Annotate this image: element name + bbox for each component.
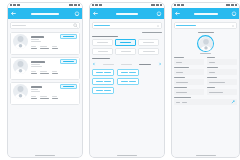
button[interactable]: Notifications — [74, 11, 80, 17]
button[interactable] — [92, 78, 114, 85]
button[interactable] — [92, 48, 113, 55]
button[interactable]: Back — [10, 10, 17, 17]
button[interactable] — [60, 84, 77, 89]
button[interactable]: Notifications — [156, 11, 162, 17]
button[interactable]: Previous day — [92, 62, 96, 66]
button[interactable] — [92, 69, 114, 76]
button[interactable] — [138, 48, 159, 55]
button[interactable] — [92, 87, 114, 94]
button[interactable] — [92, 22, 162, 29]
button[interactable] — [60, 34, 77, 39]
button[interactable] — [174, 22, 237, 29]
button[interactable] — [92, 39, 113, 46]
button[interactable] — [10, 57, 80, 80]
button[interactable] — [60, 59, 77, 64]
button[interactable] — [10, 22, 80, 29]
button[interactable]: Back — [174, 10, 181, 17]
button[interactable] — [115, 48, 136, 55]
button[interactable] — [10, 82, 80, 105]
button[interactable] — [174, 79, 204, 85]
button[interactable] — [117, 69, 139, 76]
button[interactable] — [10, 32, 80, 55]
button[interactable]: Back — [92, 10, 99, 17]
button[interactable] — [207, 69, 237, 75]
button[interactable] — [207, 89, 237, 95]
button[interactable] — [115, 39, 136, 46]
button[interactable] — [207, 79, 237, 85]
button[interactable] — [174, 69, 204, 75]
button[interactable] — [138, 39, 159, 46]
button[interactable] — [207, 59, 237, 65]
other: Edit fee — [231, 100, 235, 104]
button[interactable]: Edit fee — [174, 99, 237, 105]
button[interactable]: Next day — [158, 62, 162, 66]
button[interactable] — [174, 89, 204, 95]
button[interactable] — [174, 59, 204, 65]
button[interactable]: Notifications — [231, 11, 237, 17]
button[interactable] — [117, 78, 139, 85]
